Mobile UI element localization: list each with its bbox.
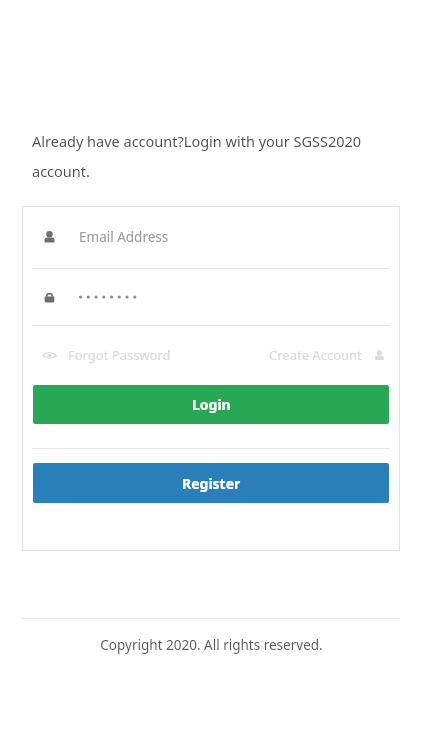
staticText: Copyright 2020. All rights reserved. bbox=[100, 636, 323, 654]
staticText: Already have account?Login with your SGS… bbox=[32, 131, 398, 182]
staticText: Forgot Password bbox=[68, 346, 171, 364]
button[interactable]: Forgot Password bbox=[42, 346, 171, 364]
button[interactable]: Email Address bbox=[32, 206, 390, 268]
staticText: Register bbox=[182, 474, 241, 493]
button[interactable] bbox=[32, 269, 390, 325]
button[interactable]: Create Account bbox=[269, 346, 386, 364]
staticText: Create Account bbox=[269, 346, 362, 364]
button[interactable]: Login bbox=[33, 385, 389, 424]
staticText: Email Address bbox=[79, 228, 169, 246]
button[interactable]: Register bbox=[33, 463, 389, 503]
staticText: Login bbox=[192, 395, 231, 414]
